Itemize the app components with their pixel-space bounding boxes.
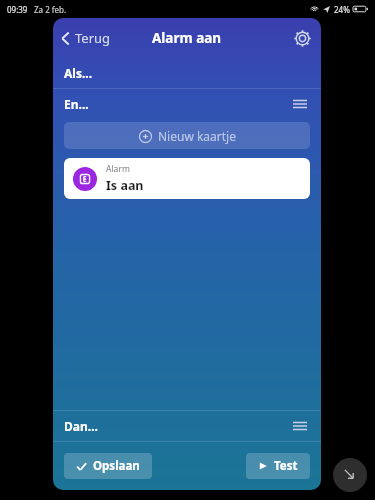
staticText: Za 2 feb. — [34, 4, 67, 15]
button[interactable]: Test — [246, 453, 310, 479]
staticText: Als... — [64, 65, 93, 81]
button[interactable]: Menu — [289, 93, 311, 115]
button[interactable]: Als... — [53, 58, 321, 88]
staticText: Terug — [75, 29, 111, 47]
button[interactable]: Collapse — [333, 458, 367, 492]
button[interactable]: Settings — [289, 25, 315, 51]
staticText: Test — [274, 458, 298, 474]
staticText: Alarm aan — [152, 29, 222, 47]
button[interactable]: Dan... — [53, 411, 321, 441]
staticText: 24% — [334, 4, 350, 15]
staticText: Nieuw kaartje — [158, 128, 236, 144]
staticText: Alarm — [106, 163, 130, 175]
button[interactable]: Alarm — [64, 158, 310, 199]
staticText: En... — [64, 96, 89, 112]
staticText: Is aan — [106, 177, 144, 194]
button[interactable]: Menu — [289, 415, 311, 437]
staticText: Opslaan — [93, 458, 140, 474]
staticText: 09:39 — [7, 4, 28, 15]
button[interactable]: En... — [53, 89, 321, 119]
staticText: Dan... — [64, 418, 98, 434]
button[interactable]: Nieuw kaartje — [64, 122, 310, 149]
button[interactable]: Opslaan — [64, 453, 152, 479]
button[interactable]: Terug — [53, 25, 119, 51]
